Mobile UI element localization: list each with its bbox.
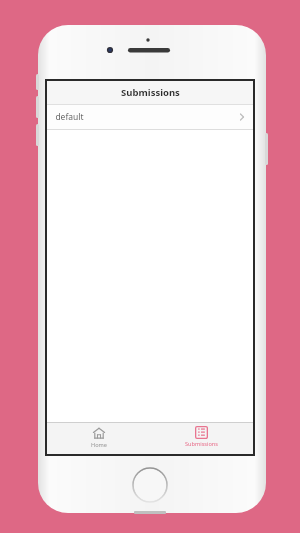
button[interactable]: default xyxy=(47,105,253,129)
button[interactable]: Home button xyxy=(131,466,169,504)
other: Home xyxy=(92,426,106,440)
button[interactable]: Home xyxy=(47,423,150,454)
other: Submissions xyxy=(195,426,208,439)
staticText: Home xyxy=(91,441,107,449)
staticText: default xyxy=(55,111,84,123)
staticText: Submissions xyxy=(185,440,218,448)
button[interactable]: Submissions xyxy=(150,423,253,454)
staticText: Submissions xyxy=(121,86,180,99)
